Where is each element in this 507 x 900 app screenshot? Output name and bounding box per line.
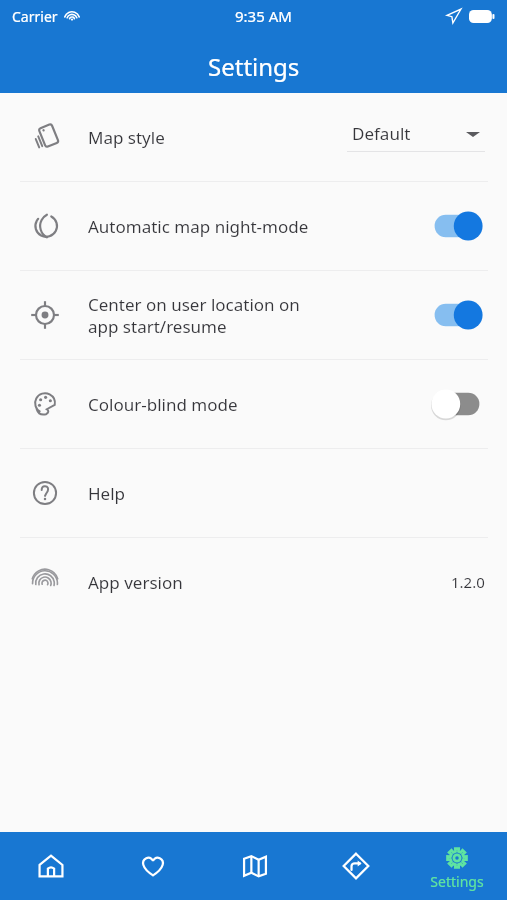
button[interactable]: Navigate	[305, 832, 406, 900]
button[interactable]: Toggle on	[429, 297, 485, 333]
staticText: Center on user location on app start/res…	[88, 293, 429, 338]
button[interactable]: Center on user location on app start/res…	[0, 271, 507, 359]
staticText: Help	[88, 482, 485, 505]
staticText: Carrier	[12, 7, 58, 26]
button[interactable]: Map style	[0, 93, 507, 181]
button[interactable]: Toggle off	[429, 386, 485, 422]
staticText: Automatic map night-mode	[88, 215, 429, 238]
staticText: Default	[352, 122, 411, 145]
staticText: 1.2.0	[451, 572, 485, 592]
button[interactable]: Automatic map night-mode	[0, 182, 507, 270]
staticText: Settings	[208, 50, 300, 83]
button[interactable]: Help	[0, 449, 507, 537]
button[interactable]: Favourites	[102, 832, 204, 900]
staticText: 9:35 AM	[235, 6, 292, 26]
staticText: App version	[88, 571, 451, 594]
button[interactable]: App version	[0, 538, 507, 626]
button[interactable]: Home	[0, 832, 102, 900]
button[interactable]: Default	[352, 122, 480, 145]
button[interactable]: Map	[204, 832, 305, 900]
staticText: Colour-blind mode	[88, 393, 429, 416]
button[interactable]: Colour-blind mode	[0, 360, 507, 448]
staticText: Settings	[430, 872, 484, 891]
button[interactable]: Settings	[406, 832, 507, 900]
button[interactable]: Toggle on	[429, 208, 485, 244]
staticText: Map style	[88, 126, 347, 149]
